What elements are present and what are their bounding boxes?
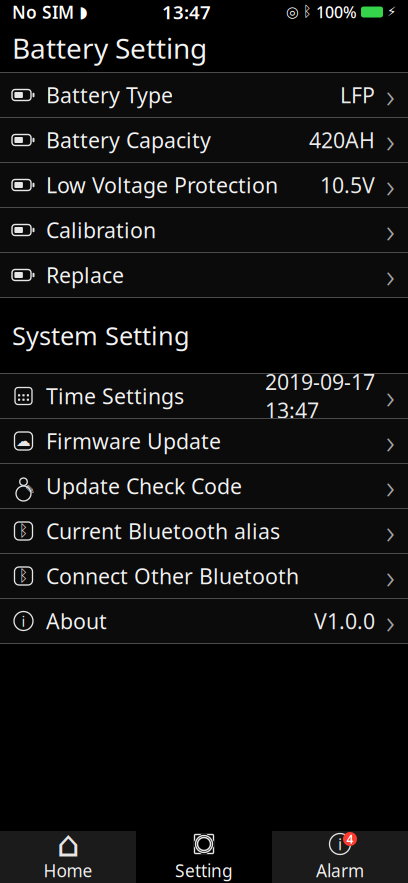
- button[interactable]: i: [0, 599, 408, 644]
- staticText: 13:47: [162, 0, 211, 24]
- staticText: Connect Other Bluetooth: [46, 562, 299, 590]
- button[interactable]: Time Settings: [0, 374, 408, 419]
- staticText: Current Bluetooth alias: [46, 517, 280, 545]
- staticText: LFP: [340, 81, 375, 109]
- staticText: ›: [386, 163, 395, 207]
- staticText: ⚡︎: [387, 4, 396, 19]
- staticText: Low Voltage Protection: [46, 171, 278, 199]
- staticText: ᛒ: [18, 568, 28, 584]
- staticText: Firmware Update: [46, 427, 221, 455]
- staticText: ✎: [25, 483, 35, 496]
- button[interactable]: ᛒ: [0, 509, 408, 554]
- staticText: i: [21, 611, 25, 631]
- staticText: ›: [386, 599, 395, 643]
- staticText: 420AH: [309, 126, 375, 154]
- staticText: Battery Setting: [12, 29, 207, 67]
- staticText: Replace: [46, 261, 124, 289]
- button[interactable]: Low Voltage Protection: [0, 163, 408, 208]
- button[interactable]: ᛒ: [0, 554, 408, 599]
- staticText: Battery Capacity: [46, 126, 211, 154]
- staticText: 100%: [316, 1, 357, 23]
- staticText: ›: [386, 464, 395, 508]
- button[interactable]: Replace: [0, 253, 408, 298]
- staticText: 10.5V: [320, 171, 375, 199]
- staticText: Update Check Code: [46, 472, 242, 500]
- staticText: V1.0.0: [314, 607, 375, 635]
- staticText: Home: [43, 859, 92, 882]
- staticText: ›: [386, 419, 395, 463]
- staticText: ›: [386, 509, 395, 553]
- staticText: Calibration: [46, 216, 156, 244]
- staticText: i: [338, 833, 342, 855]
- button[interactable]: Setting: [136, 831, 272, 883]
- staticText: Time Settings: [46, 382, 184, 410]
- button[interactable]: ⌂: [0, 831, 136, 883]
- staticText: ⌂: [56, 824, 79, 864]
- staticText: ›: [386, 554, 395, 598]
- staticText: ›: [386, 73, 395, 117]
- button[interactable]: ☁︎: [0, 419, 408, 464]
- staticText: ◗: [79, 3, 87, 21]
- staticText: About: [46, 607, 107, 635]
- staticText: 4: [346, 831, 353, 847]
- button[interactable]: Battery Type: [0, 73, 408, 118]
- staticText: ◎: [286, 4, 299, 20]
- staticText: ›: [386, 118, 395, 162]
- staticText: ᛒ: [303, 5, 312, 19]
- button[interactable]: ✎: [0, 464, 408, 509]
- staticText: Setting: [175, 859, 233, 882]
- button[interactable]: Battery Capacity: [0, 118, 408, 163]
- staticText: ›: [386, 208, 395, 252]
- staticText: System Setting: [12, 319, 190, 352]
- staticText: ›: [386, 374, 395, 418]
- staticText: ᛒ: [18, 523, 28, 539]
- staticText: ›: [386, 253, 395, 297]
- staticText: 2019-09-17 13:47: [265, 368, 375, 424]
- button[interactable]: i: [272, 831, 408, 883]
- button[interactable]: Calibration: [0, 208, 408, 253]
- staticText: Battery Type: [46, 81, 173, 109]
- staticText: ☁︎: [16, 433, 31, 449]
- staticText: No SIM: [12, 0, 74, 23]
- staticText: Alarm: [316, 859, 364, 882]
